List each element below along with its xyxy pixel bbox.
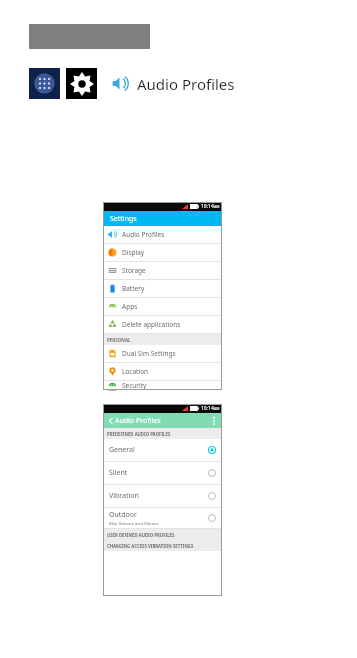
staticText: Vibration xyxy=(109,491,139,501)
button[interactable]: Storage xyxy=(103,262,222,279)
staticText: Settings xyxy=(110,214,137,224)
staticText: CHARGING ACCESS VIBRATION SETTINGS xyxy=(107,543,194,549)
button[interactable]: Settings xyxy=(66,68,97,99)
staticText: Audio Profiles xyxy=(137,74,235,94)
staticText: Storage xyxy=(122,266,146,275)
staticText: 10:14 xyxy=(201,405,214,412)
button[interactable]: Audio Profiles xyxy=(103,226,222,243)
button[interactable]: General xyxy=(103,439,222,461)
button[interactable]: Apps xyxy=(103,298,222,315)
staticText: Audio Profiles xyxy=(115,416,161,426)
button[interactable]: Settings xyxy=(103,211,222,226)
staticText: PERSONAL xyxy=(107,337,131,343)
staticText: General xyxy=(109,445,135,455)
button[interactable]: All apps xyxy=(29,68,60,99)
button[interactable]: Back xyxy=(106,416,115,425)
staticText: Display xyxy=(122,248,145,257)
button[interactable]: Outdoor xyxy=(103,508,222,528)
staticText: USER DEFINED AUDIO PROFILES xyxy=(107,532,175,538)
staticText: PREDEFINED AUDIO PROFILES xyxy=(107,431,171,437)
button[interactable]: Delete applications xyxy=(103,316,222,333)
staticText: Battery xyxy=(122,284,145,293)
staticText: Outdoor xyxy=(109,510,137,520)
button[interactable]: Security xyxy=(103,381,222,390)
staticText: Silent xyxy=(109,468,128,478)
staticText: Audio Profiles xyxy=(122,230,165,239)
staticText: Apps xyxy=(122,302,138,311)
button[interactable]: Vibration xyxy=(103,485,222,507)
button[interactable]: Display xyxy=(103,244,222,261)
staticText: 10:14 xyxy=(201,203,214,210)
button[interactable]: Location xyxy=(103,363,222,380)
staticText: Delete applications xyxy=(122,320,181,329)
staticText: Security xyxy=(122,381,147,390)
staticText: Location xyxy=(122,367,149,376)
staticText: AM xyxy=(214,204,220,209)
button[interactable]: More options xyxy=(208,415,219,426)
staticText: Dual Sim Settings xyxy=(122,349,176,358)
staticText: AM xyxy=(214,406,220,411)
staticText: Max Volume and Vibrate xyxy=(109,520,159,526)
button[interactable]: Dual Sim Settings xyxy=(103,345,222,362)
button[interactable]: Silent xyxy=(103,462,222,484)
button[interactable]: Battery xyxy=(103,280,222,297)
